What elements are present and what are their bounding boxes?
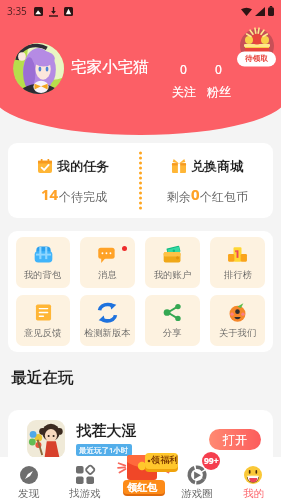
staticText: 消息 xyxy=(98,269,117,281)
staticText: 宅家小宅猫 xyxy=(71,57,149,77)
button[interactable]: 检测新版本 xyxy=(80,295,135,346)
staticText: 我的 xyxy=(243,487,264,500)
staticText: 0 xyxy=(180,61,187,77)
staticText: 领红包 xyxy=(127,481,157,494)
staticText: 14 xyxy=(41,184,59,204)
staticText: 0 xyxy=(215,61,222,77)
staticText: 我的任务 xyxy=(57,158,109,174)
staticText: 个红包币 xyxy=(200,189,248,204)
staticText: 剩余 xyxy=(167,189,191,204)
button[interactable]: 我的账户 xyxy=(145,237,200,288)
staticText: 3:35 xyxy=(7,4,27,18)
button[interactable]: 0 xyxy=(169,61,198,99)
button[interactable]: 我的背包 xyxy=(16,237,70,288)
button[interactable]: 意见反馈 xyxy=(16,295,70,346)
staticText: 找游戏 xyxy=(69,487,101,500)
staticText: 99+ xyxy=(204,455,219,467)
button[interactable]: 找茬大湿 xyxy=(8,410,273,468)
staticText: 粉丝 xyxy=(207,84,231,99)
staticText: 分享 xyxy=(163,327,182,339)
staticText: 发现 xyxy=(18,487,39,500)
button[interactable]: 头像 xyxy=(13,43,64,94)
staticText: 意见反馈 xyxy=(24,327,62,339)
staticText: 游戏圈 xyxy=(181,487,213,500)
staticText: 最近玩了1小时 xyxy=(79,445,129,455)
button[interactable]: 我的 xyxy=(225,457,281,500)
button[interactable]: 待领取 xyxy=(234,26,278,68)
staticText: 我的背包 xyxy=(24,269,62,281)
button[interactable]: 打开 xyxy=(209,429,261,450)
button[interactable]: 0 xyxy=(204,61,233,99)
staticText: 待领取 xyxy=(245,54,268,63)
staticText: 关于我们 xyxy=(219,327,257,339)
button[interactable]: 领红包 xyxy=(113,448,179,491)
staticText: 我的账户 xyxy=(154,269,192,281)
staticText: 关注 xyxy=(172,84,196,99)
button[interactable]: 99+ xyxy=(169,457,225,500)
staticText: 排行榜 xyxy=(224,269,252,281)
button[interactable]: 关于我们 xyxy=(210,295,265,346)
staticText: 0 xyxy=(191,184,200,204)
button[interactable]: 排行榜 xyxy=(210,237,265,288)
button[interactable]: 领红包 xyxy=(113,457,169,500)
button[interactable]: 兑换商城 xyxy=(142,143,273,218)
staticText: 最近在玩 xyxy=(11,368,73,388)
staticText: 领福利 xyxy=(151,454,178,465)
staticText: 个待完成 xyxy=(59,189,107,204)
button[interactable]: 分享 xyxy=(145,295,200,346)
button[interactable]: 发现 xyxy=(0,457,57,500)
staticText: 找茬大湿 xyxy=(76,422,136,441)
button[interactable]: 我的任务 xyxy=(8,143,139,218)
button[interactable]: 消息 xyxy=(80,237,135,288)
staticText: 兑换商城 xyxy=(191,158,243,174)
staticText: 打开 xyxy=(223,432,247,447)
staticText: 检测新版本 xyxy=(84,327,131,339)
button[interactable]: 找游戏 xyxy=(57,457,113,500)
